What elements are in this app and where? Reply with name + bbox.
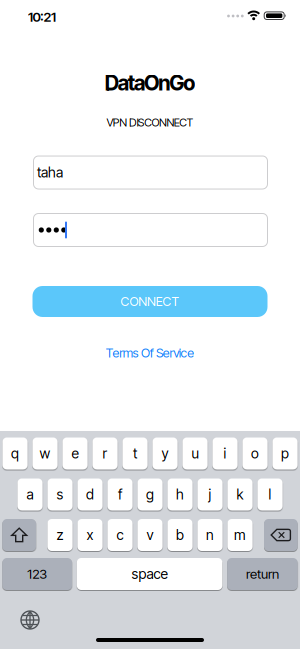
staticText: g	[146, 486, 154, 503]
button[interactable]: space	[77, 558, 222, 590]
button[interactable]: z	[47, 519, 73, 551]
button[interactable]: e	[62, 437, 88, 469]
staticText: m	[234, 526, 246, 543]
staticText: c	[116, 526, 123, 543]
staticText: s	[56, 486, 63, 503]
staticText: VPN DISCONNECT	[106, 116, 194, 129]
staticText: z	[56, 526, 63, 543]
button[interactable]: n	[197, 519, 223, 551]
staticText: t	[133, 445, 137, 462]
button[interactable]: j	[197, 478, 223, 510]
button[interactable]: b	[167, 519, 193, 551]
staticText: space	[132, 565, 168, 582]
button[interactable]: t	[122, 437, 148, 469]
staticText: w	[39, 445, 50, 462]
button[interactable]: l	[257, 478, 283, 510]
staticText: v	[146, 526, 153, 543]
staticText: u	[191, 445, 198, 462]
button[interactable]: y	[152, 437, 178, 469]
button[interactable]: Next keyboard	[16, 606, 44, 634]
staticText: k	[236, 486, 243, 503]
staticText: Terms Of Service	[106, 345, 194, 361]
staticText: h	[176, 486, 184, 503]
button[interactable]: g	[137, 478, 163, 510]
staticText: q	[11, 445, 19, 462]
staticText: taha	[37, 164, 63, 181]
button[interactable]: 123	[2, 558, 72, 590]
staticText: return	[246, 566, 279, 582]
staticText: p	[281, 445, 289, 462]
button[interactable]: d	[77, 478, 103, 510]
staticText: b	[176, 526, 184, 543]
button[interactable]: v	[137, 519, 163, 551]
button[interactable]: k	[227, 478, 253, 510]
staticText: j	[208, 486, 211, 503]
staticText: CONNECT	[121, 294, 179, 309]
button[interactable]: Terms Of Service	[106, 345, 194, 361]
staticText: l	[268, 486, 271, 503]
button[interactable]: f	[107, 478, 133, 510]
button[interactable]: p	[272, 437, 298, 469]
staticText: i	[223, 445, 226, 462]
button[interactable]: Delete	[264, 519, 298, 551]
button[interactable]: h	[167, 478, 193, 510]
button[interactable]: o	[242, 437, 268, 469]
staticText: e	[71, 445, 78, 462]
button[interactable]: c	[107, 519, 133, 551]
staticText: 10:21	[28, 9, 56, 25]
button[interactable]: i	[212, 437, 238, 469]
button[interactable]: s	[47, 478, 73, 510]
staticText: 123	[27, 566, 47, 582]
button[interactable]: q	[2, 437, 28, 469]
button[interactable]: Shift	[2, 519, 36, 551]
staticText: DataOnGo	[105, 70, 195, 95]
staticText: n	[206, 526, 214, 543]
staticText: r	[102, 445, 107, 462]
staticText: o	[251, 445, 259, 462]
button[interactable]: a	[17, 478, 43, 510]
button[interactable]: CONNECT	[32, 286, 267, 317]
staticText: d	[86, 486, 94, 503]
button[interactable]: w	[32, 437, 58, 469]
button[interactable]: u	[182, 437, 208, 469]
button[interactable]: Username	[33, 155, 268, 189]
staticText: y	[161, 445, 168, 462]
staticText: x	[86, 526, 93, 543]
button[interactable]: r	[92, 437, 118, 469]
button[interactable]: m	[227, 519, 253, 551]
button[interactable]: Password	[33, 213, 268, 247]
button[interactable]: return	[227, 558, 298, 590]
staticText: f	[118, 486, 122, 503]
button[interactable]: x	[77, 519, 103, 551]
staticText: a	[26, 486, 33, 503]
